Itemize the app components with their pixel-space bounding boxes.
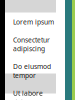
staticText: Consectetur adipiscing [13, 35, 50, 53]
staticText: Do eiusmod tempor [13, 62, 51, 80]
staticText: Ut labore dolore [13, 89, 43, 100]
staticText: Lorem ipsum [13, 17, 54, 26]
